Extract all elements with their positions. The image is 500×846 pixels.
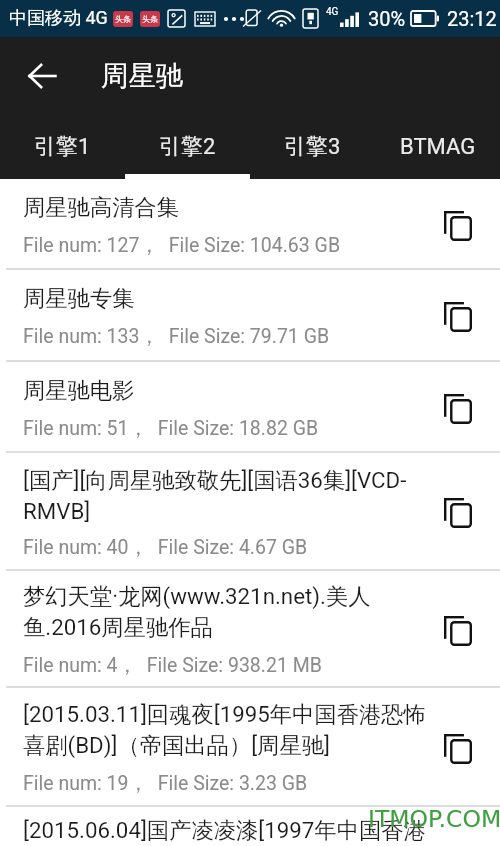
staticText: 头条 <box>115 14 131 24</box>
staticText: [2015.06.04]国产凌凌漆[1997年中国香港 <box>23 817 426 845</box>
staticText: 引擎2 <box>159 133 216 161</box>
button[interactable]: Copy <box>436 727 480 771</box>
button[interactable]: 周星驰专集 <box>0 270 500 362</box>
staticText: File num: 4， File Size: 938.21 MB <box>23 653 322 678</box>
staticText: [2015.03.11]回魂夜[1995年中国香港恐怖 喜剧(BD)]（帝国出品… <box>23 701 426 760</box>
staticText: 23:12 <box>447 7 497 30</box>
button[interactable]: [2015.03.11]回魂夜[1995年中国香港恐怖 喜剧(BD)]（帝国出品… <box>0 688 500 807</box>
button[interactable]: Copy <box>436 609 480 653</box>
staticText: 周星驰 <box>101 59 184 94</box>
button[interactable]: Copy <box>436 491 480 535</box>
staticText: File num: 19， File Size: 3.23 GB <box>23 771 308 796</box>
button[interactable]: Copy <box>436 387 480 431</box>
button[interactable]: 周星驰电影 <box>0 362 500 453</box>
staticText: 引擎1 <box>34 133 91 161</box>
button[interactable]: Back <box>22 56 62 96</box>
staticText: File num: 127， File Size: 104.63 GB <box>23 233 341 258</box>
button[interactable]: Copy <box>436 204 480 248</box>
button[interactable]: [国产][向周星驰致敬先][国语36集][VCD- RMVB] <box>0 453 500 571</box>
staticText: 周星驰电影 <box>23 377 135 405</box>
button[interactable]: Copy <box>436 295 480 339</box>
staticText: 头条 <box>142 14 158 24</box>
staticText: 30% <box>368 7 406 30</box>
button[interactable]: [2015.06.04]国产凌凌漆[1997年中国香港 <box>0 807 500 846</box>
staticText: BTMAG <box>400 134 476 160</box>
staticText: 4G <box>326 6 339 18</box>
button[interactable]: 周星驰高清合集 <box>0 179 500 270</box>
staticText: ITMOP.COM <box>368 805 500 832</box>
staticText: File num: 51， File Size: 18.82 GB <box>23 416 319 441</box>
staticText: 周星驰专集 <box>23 285 135 313</box>
staticText: 中国移动 4G <box>9 7 108 30</box>
staticText: 周星驰高清合集 <box>23 194 180 222</box>
button[interactable]: 引擎1 <box>0 115 125 179</box>
button[interactable]: 梦幻天堂·龙网(www.321n.net).美人 鱼.2016周星驰作品 <box>0 571 500 688</box>
staticText: 引擎3 <box>284 133 341 161</box>
staticText: File num: 133， File Size: 79.71 GB <box>23 324 330 349</box>
staticText: [国产][向周星驰致敬先][国语36集][VCD- RMVB] <box>23 467 407 524</box>
button[interactable]: BTMAG <box>375 115 500 179</box>
button[interactable]: 引擎2 <box>125 115 250 179</box>
staticText: 梦幻天堂·龙网(www.321n.net).美人 鱼.2016周星驰作品 <box>23 583 371 642</box>
staticText: File num: 40， File Size: 4.67 GB <box>23 535 308 560</box>
button[interactable]: 引擎3 <box>250 115 375 179</box>
